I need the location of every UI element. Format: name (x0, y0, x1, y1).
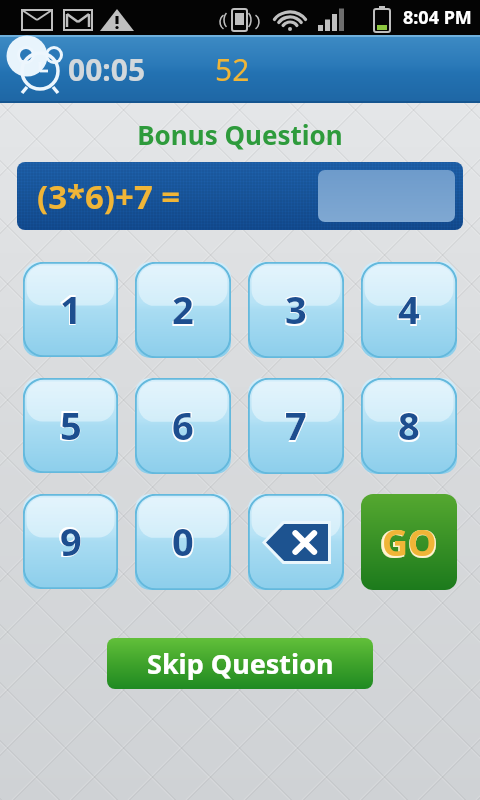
staticText: 3 (284, 281, 309, 338)
staticText: 00:05 (68, 49, 146, 90)
staticText: 52 (215, 49, 250, 90)
staticText: 8 (398, 399, 420, 451)
staticText: 5 (58, 396, 83, 453)
button[interactable]: 3 (248, 262, 344, 358)
staticText: 6 (172, 399, 194, 451)
button[interactable]: 8 (361, 378, 457, 474)
button[interactable]: 1 (23, 262, 118, 357)
staticText: 2 (172, 283, 194, 335)
staticText: 4 (397, 281, 422, 338)
staticText: 4 (398, 283, 420, 335)
staticText: Skip Question (147, 645, 334, 682)
button[interactable]: Answer field (318, 170, 455, 222)
staticText: 0 (171, 513, 196, 570)
button[interactable]: 0 (135, 494, 231, 590)
staticText: 7 (285, 399, 307, 451)
staticText: 0 (172, 515, 194, 567)
staticText: 1 (58, 280, 83, 337)
staticText: (3*6)+7 = (37, 174, 181, 219)
staticText: 1 (60, 283, 82, 335)
button[interactable]: GO (361, 494, 457, 590)
staticText: 9 (58, 512, 83, 569)
staticText: 7 (284, 397, 309, 454)
button[interactable]: 2 (135, 262, 231, 358)
button[interactable]: 6 (135, 378, 231, 474)
button[interactable]: 9 (23, 494, 118, 589)
staticText: 2 (171, 281, 196, 338)
button[interactable]: Skip Question (107, 638, 373, 689)
staticText: GO (379, 516, 439, 569)
staticText: Bonus Question (0, 117, 480, 152)
staticText: 8:04 PM (403, 5, 472, 30)
button[interactable]: 4 (361, 262, 457, 358)
staticText: 6 (171, 397, 196, 454)
button[interactable]: 7 (248, 378, 344, 474)
staticText: 3 (285, 283, 307, 335)
staticText: 9 (60, 515, 82, 567)
button[interactable]: Backspace (248, 494, 344, 590)
button[interactable]: 5 (23, 378, 118, 473)
staticText: GO (382, 518, 437, 567)
staticText: 5 (60, 399, 82, 451)
staticText: 8 (397, 397, 422, 454)
